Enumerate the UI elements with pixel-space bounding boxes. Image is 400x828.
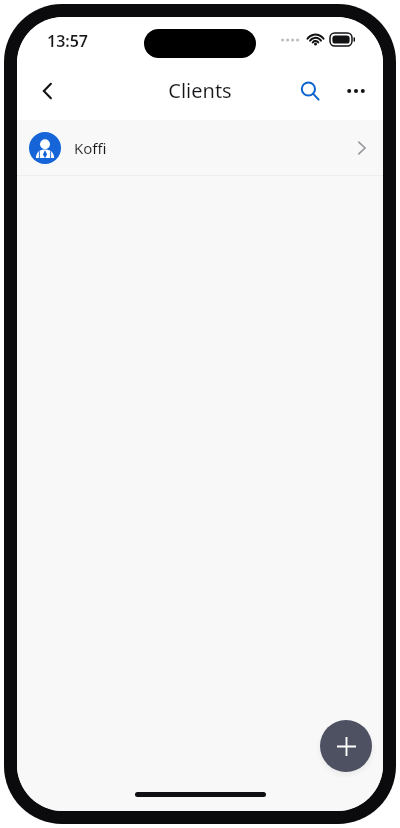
button[interactable]: Search [287,68,333,114]
button[interactable]: More options [333,68,379,114]
staticText: 13:57 [47,30,89,52]
button[interactable]: Koffi [17,120,383,175]
button[interactable]: Back [25,68,71,114]
staticText: Koffi [74,138,357,158]
button[interactable]: Add client [320,720,372,772]
staticText: Clients [168,77,232,104]
